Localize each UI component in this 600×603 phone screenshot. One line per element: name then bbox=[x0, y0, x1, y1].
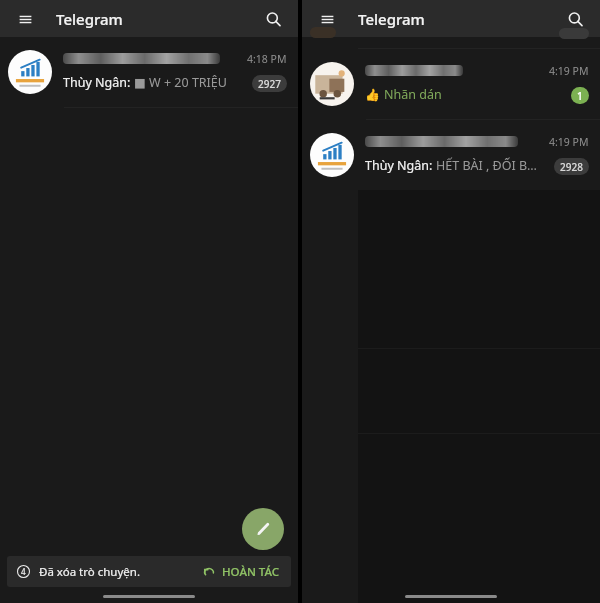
button[interactable]: Thùy Ngân: bbox=[0, 37, 298, 107]
staticText: Nhãn dán bbox=[384, 86, 442, 103]
button[interactable]: 👍 bbox=[302, 49, 600, 119]
button[interactable]: Search bbox=[258, 4, 288, 34]
staticText: Thùy Ngân: bbox=[63, 74, 131, 91]
staticText: Telegram bbox=[56, 9, 123, 29]
staticText: Đã xóa trò chuyện. bbox=[39, 564, 140, 580]
staticText: 👍 bbox=[365, 88, 380, 102]
staticText: Thùy Ngân: bbox=[365, 157, 433, 174]
button[interactable]: Open navigation menu bbox=[312, 4, 342, 34]
staticText: 2927 bbox=[258, 77, 281, 91]
staticText: HOÀN TÁC bbox=[222, 564, 280, 580]
staticText: 4:19 PM bbox=[549, 135, 589, 149]
button[interactable]: Thùy Ngân: bbox=[302, 120, 600, 190]
button[interactable]: HOÀN TÁC bbox=[200, 561, 282, 583]
staticText: 1 bbox=[577, 89, 583, 103]
staticText: Telegram bbox=[358, 9, 425, 29]
staticText: ■ W + 20 TRIỆU bbox=[134, 74, 227, 91]
staticText: 4:19 PM bbox=[549, 64, 589, 78]
button[interactable]: Search bbox=[560, 4, 590, 34]
button[interactable]: Open navigation menu bbox=[10, 4, 40, 34]
staticText: HẾT BÀI , ĐỐI BÀN NH… bbox=[436, 157, 543, 174]
staticText: 2928 bbox=[560, 160, 583, 174]
button[interactable]: New message bbox=[242, 508, 284, 550]
staticText: 4:18 PM bbox=[247, 52, 287, 66]
staticText: 4 bbox=[21, 566, 26, 577]
